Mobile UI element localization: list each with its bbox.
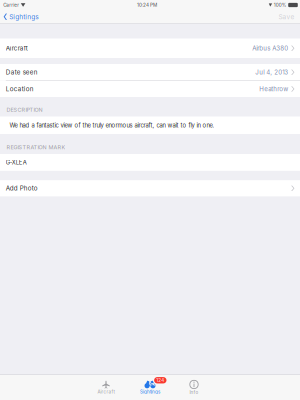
button[interactable]: Aircraft [0, 38, 300, 58]
staticText: Airbus A380 [252, 44, 288, 52]
staticText: G-XLEA [6, 159, 27, 166]
button[interactable]: Sightings [0, 10, 44, 23]
staticText: Location [6, 85, 34, 93]
staticText: 100% [274, 2, 287, 8]
staticText: Save [278, 13, 294, 21]
staticText: DESCRIPTION [6, 106, 42, 113]
staticText: Aircraft [97, 389, 114, 395]
button[interactable]: Info [172, 375, 216, 399]
staticText: 124 [156, 377, 164, 383]
button[interactable]: Aircraft [84, 375, 128, 399]
button[interactable]: Save [272, 10, 300, 23]
staticText: Info [189, 390, 198, 395]
button[interactable]: Date seen [0, 64, 300, 80]
staticText: 10:24 PM [137, 2, 157, 8]
staticText: We had a fantastic view of the truly eno… [9, 122, 214, 129]
button[interactable]: Location [0, 81, 300, 97]
staticText: Carrier [3, 2, 19, 8]
button[interactable]: 124 [128, 375, 172, 399]
staticText: Jul 4, 2013 [255, 68, 288, 76]
staticText: Add Photo [6, 184, 38, 192]
button[interactable]: Add Photo [0, 180, 300, 196]
staticText: REGISTRATION MARK [6, 144, 65, 150]
staticText: Sightings [140, 389, 160, 395]
staticText: Date seen [6, 68, 38, 76]
staticText: Heathrow [259, 85, 288, 93]
staticText: Aircraft [6, 44, 28, 52]
staticText: Sightings [9, 13, 38, 21]
